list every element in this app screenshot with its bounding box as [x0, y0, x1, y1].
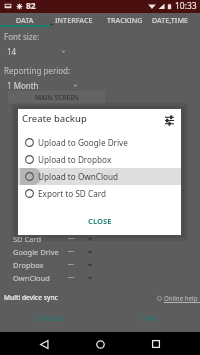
- button[interactable]: Recent apps: [145, 333, 167, 355]
- staticText: Online help: [164, 294, 198, 302]
- button[interactable]: Export to SD Card: [18, 185, 181, 202]
- staticText: INTERFACE: [55, 15, 93, 25]
- staticText: CANCEL: [36, 313, 65, 323]
- button[interactable]: Backup settings: [161, 112, 177, 128]
- staticText: TRACKING: [107, 15, 143, 25]
- staticText: SD Card: [13, 234, 42, 244]
- staticText: 82: [26, 0, 36, 12]
- button[interactable]: Home: [89, 333, 111, 355]
- button[interactable]: Google Drive: [0, 245, 200, 258]
- staticText: 1 Month: [7, 80, 39, 91]
- staticText: OwnCloud: [13, 273, 50, 283]
- staticText: Create backup: [22, 112, 87, 125]
- button[interactable]: Back: [33, 333, 55, 355]
- button[interactable]: CLOSE: [82, 214, 118, 228]
- staticText: Reporting period:: [4, 65, 71, 76]
- button[interactable]: Online help: [157, 293, 200, 303]
- staticText: Google Drive: [13, 247, 59, 257]
- staticText: DATE,TIME: [152, 15, 189, 25]
- staticText: Font size:: [4, 31, 40, 42]
- button[interactable]: DATE,TIME: [145, 13, 195, 26]
- button[interactable]: Upload to Google Drive: [18, 134, 181, 151]
- button[interactable]: INTERFACE: [49, 13, 99, 26]
- button[interactable]: Upload to Dropbox: [18, 151, 181, 168]
- staticText: 10:33: [175, 0, 197, 12]
- staticText: Dropbox: [13, 260, 44, 270]
- staticText: Upload to Google Drive: [38, 137, 128, 148]
- button[interactable]: Dropbox: [0, 258, 200, 271]
- staticText: Upload to Dropbox: [38, 154, 112, 165]
- staticText: CLOSE: [88, 216, 112, 226]
- button[interactable]: SAVE: [100, 308, 200, 327]
- button[interactable]: OwnCloud: [0, 271, 200, 284]
- button[interactable]: CANCEL: [0, 308, 100, 327]
- staticText: MAIN SCREEN: [35, 93, 79, 102]
- button[interactable]: Upload to OwnCloud: [18, 168, 181, 185]
- button[interactable]: MAIN SCREEN: [8, 91, 105, 104]
- staticText: Upload to OwnCloud: [38, 171, 119, 182]
- staticText: Export to SD Card: [38, 188, 106, 199]
- button[interactable]: DATA: [0, 13, 50, 26]
- staticText: 14: [7, 46, 17, 57]
- staticText: Multi device sync: [4, 293, 58, 302]
- button[interactable]: TRACKING: [100, 13, 150, 26]
- staticText: SAVE: [141, 313, 159, 323]
- button[interactable]: SD Card: [0, 232, 200, 245]
- staticText: DATA: [16, 15, 34, 25]
